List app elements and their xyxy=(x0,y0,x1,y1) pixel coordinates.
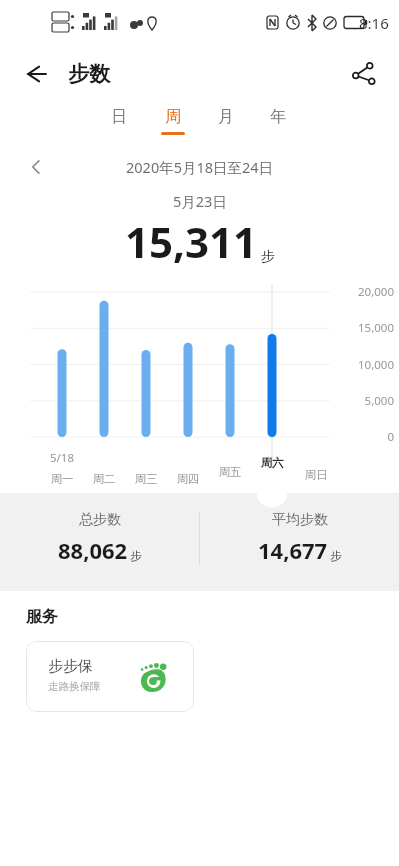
button[interactable]: 周日 xyxy=(292,468,340,482)
staticText: 14,677 xyxy=(258,535,328,565)
staticText: 步 xyxy=(130,549,142,563)
staticText: 月 xyxy=(218,107,234,127)
staticText: 周日 xyxy=(292,468,340,482)
staticText: 15,311 xyxy=(125,213,258,270)
staticText: 年 xyxy=(270,107,286,127)
button[interactable]: 周六 xyxy=(248,456,296,470)
staticText: 2020年5月18日至24日 xyxy=(126,157,274,177)
button[interactable]: 周 xyxy=(149,107,197,147)
button[interactable]: 周五 xyxy=(206,465,254,479)
staticText: 总步数 xyxy=(79,511,121,529)
staticText: 周 xyxy=(165,107,181,127)
button[interactable]: Previous week xyxy=(18,151,54,183)
staticText: 步 xyxy=(261,248,275,266)
button[interactable]: 年 xyxy=(254,107,302,147)
staticText: 5/18 xyxy=(38,450,86,466)
staticText: 20,000 xyxy=(336,284,394,300)
staticText: 平均步数 xyxy=(272,511,328,529)
button[interactable]: 平均步数 xyxy=(200,511,399,565)
staticText: 15,000 xyxy=(336,320,394,336)
button[interactable]: Share xyxy=(341,51,387,97)
button[interactable]: 总步数 xyxy=(0,511,199,565)
button[interactable]: 周四 xyxy=(164,472,212,486)
staticText: 0 xyxy=(336,429,394,445)
button[interactable]: 日 xyxy=(95,107,143,147)
staticText: 步数 xyxy=(68,61,110,87)
staticText: 步 xyxy=(330,549,342,563)
staticText: 周四 xyxy=(164,472,212,486)
button[interactable]: 步步保 xyxy=(26,641,194,712)
button[interactable]: Back xyxy=(14,52,58,96)
staticText: 周一 xyxy=(38,472,86,486)
staticText: 88,062 xyxy=(58,535,128,565)
button[interactable]: 周二 xyxy=(80,472,128,486)
staticText: 服务 xyxy=(26,607,58,627)
staticText: 周六 xyxy=(248,456,296,470)
staticText: 周二 xyxy=(80,472,128,486)
staticText: 周五 xyxy=(206,465,254,479)
staticText: 步步保 xyxy=(48,657,93,676)
staticText: 周三 xyxy=(122,472,170,486)
button[interactable]: 周三 xyxy=(122,472,170,486)
staticText: 走路换保障 xyxy=(48,680,101,693)
staticText: 8:16 xyxy=(359,13,389,33)
button[interactable]: 周一 xyxy=(38,472,86,486)
staticText: 5,000 xyxy=(336,393,394,409)
staticText: 日 xyxy=(111,107,127,127)
staticText: 10,000 xyxy=(336,357,394,373)
button[interactable]: 月 xyxy=(202,107,250,147)
staticText: 5月23日 xyxy=(173,191,227,211)
